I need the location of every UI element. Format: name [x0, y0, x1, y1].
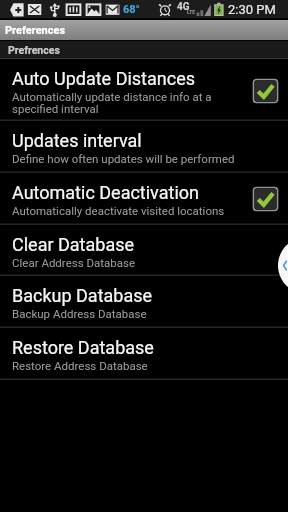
- staticText: 2:30 PM: [228, 2, 276, 17]
- button[interactable]: Clear Database: [0, 225, 288, 276]
- button[interactable]: Restore Database: [0, 328, 288, 380]
- staticText: Prefrences: [8, 44, 60, 56]
- staticText: Define how often updates will be perform…: [12, 152, 235, 165]
- staticText: 4G: [177, 1, 190, 13]
- staticText: LTE: [187, 9, 196, 15]
- button[interactable]: Toggle Auto Update Distances: [253, 79, 278, 103]
- staticText: Restore Address Database: [12, 359, 148, 372]
- button[interactable]: Automatic Deactivation: [0, 173, 288, 225]
- staticText: Clear Database: [12, 234, 135, 255]
- staticText: Auto Update Distances: [12, 68, 195, 89]
- staticText: Automatic Deactivation: [12, 182, 199, 203]
- button[interactable]: Open side panel: [278, 244, 288, 287]
- staticText: Clear Address Database: [12, 256, 136, 269]
- staticText: Restore Database: [12, 337, 154, 358]
- staticText: Backup Address Database: [12, 307, 147, 320]
- button[interactable]: Toggle Automatic Deactivation: [253, 187, 278, 211]
- staticText: Preferences: [5, 24, 66, 37]
- staticText: Automatically update distance info at a …: [12, 90, 212, 116]
- staticText: Automatically deactivate visited locatio…: [12, 204, 225, 217]
- button[interactable]: Backup Database: [0, 276, 288, 328]
- staticText: 68°: [123, 3, 140, 16]
- button[interactable]: Updates interval: [0, 121, 288, 173]
- staticText: Updates interval: [12, 130, 142, 151]
- button[interactable]: Auto Update Distances: [0, 59, 288, 121]
- staticText: Backup Database: [12, 285, 153, 306]
